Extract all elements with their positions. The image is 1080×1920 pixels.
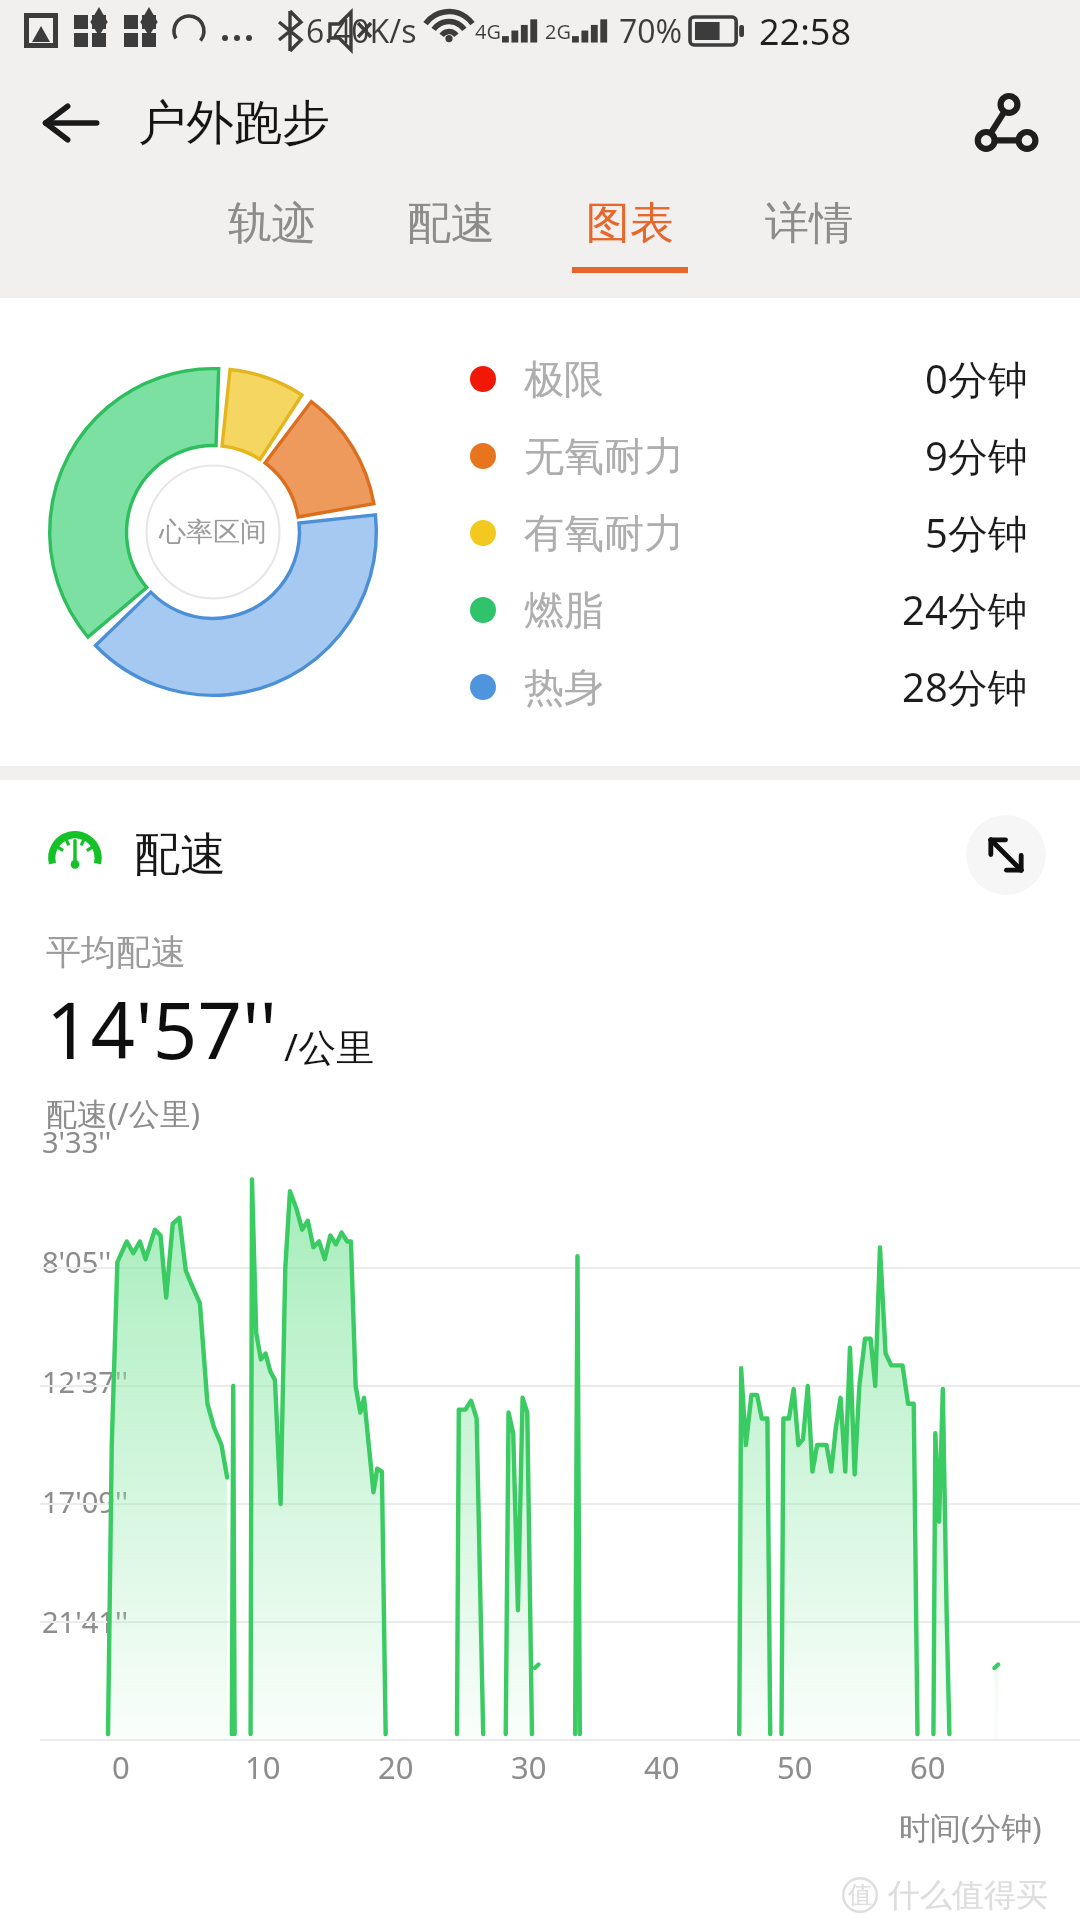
button[interactable]: Expand chart: [966, 815, 1046, 895]
staticText: 20: [378, 1746, 414, 1788]
staticText: /公里: [284, 1020, 375, 1072]
staticText: 平均配速: [46, 930, 186, 974]
staticText: 什么值得买: [888, 1875, 1048, 1915]
button[interactable]: 详情: [719, 184, 898, 292]
staticText: 50: [777, 1746, 813, 1788]
staticText: 配速: [134, 826, 226, 884]
staticText: 极限: [524, 354, 604, 404]
button[interactable]: Share: [958, 75, 1054, 171]
staticText: 60: [910, 1746, 946, 1788]
staticText: 8'05'': [42, 1242, 112, 1281]
staticText: 4G: [475, 18, 501, 45]
staticText: 0: [112, 1746, 130, 1788]
staticText: 值: [848, 1880, 872, 1910]
staticText: 有氧耐力: [524, 508, 684, 558]
staticText: 轨迹: [228, 196, 316, 251]
staticText: 详情: [765, 196, 853, 251]
button[interactable]: 配速: [361, 184, 540, 292]
staticText: 户外跑步: [138, 93, 330, 153]
staticText: 热身: [524, 662, 604, 712]
staticText: 9分钟: [925, 428, 1028, 483]
staticText: 28分钟: [902, 659, 1028, 714]
staticText: 图表: [586, 196, 674, 251]
staticText: 17'09'': [42, 1482, 128, 1521]
staticText: 0分钟: [925, 351, 1028, 406]
staticText: 燃脂: [524, 585, 604, 635]
staticText: 12'37'': [42, 1362, 128, 1401]
staticText: 6.40K/s: [306, 9, 417, 53]
staticText: 14'57'': [46, 976, 278, 1082]
staticText: 2G: [545, 18, 571, 45]
staticText: 70%: [619, 9, 683, 53]
button[interactable]: Back: [26, 79, 114, 167]
staticText: 40: [644, 1746, 680, 1788]
staticText: 22:58: [759, 7, 852, 56]
staticText: 无氧耐力: [524, 431, 684, 481]
staticText: 24分钟: [902, 582, 1028, 637]
button[interactable]: 轨迹: [182, 184, 361, 292]
staticText: 10: [245, 1746, 281, 1788]
staticText: 21'41'': [42, 1602, 128, 1641]
staticText: 5分钟: [925, 505, 1028, 560]
staticText: 30: [511, 1746, 547, 1788]
staticText: 配速: [407, 196, 495, 251]
staticText: 心率区间: [159, 515, 267, 549]
staticText: 3'33'': [42, 1122, 112, 1161]
staticText: 配速(/公里): [46, 1092, 201, 1134]
staticText: 时间(分钟): [899, 1806, 1042, 1848]
button[interactable]: 图表: [540, 184, 719, 292]
